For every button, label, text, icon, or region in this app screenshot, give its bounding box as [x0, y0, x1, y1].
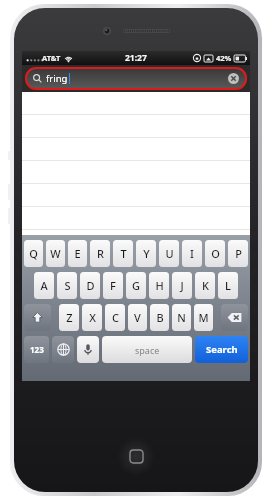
button[interactable]: W — [46, 240, 65, 267]
staticText: T — [120, 246, 127, 261]
staticText: AT&T — [42, 53, 61, 63]
button[interactable]: Shift — [24, 304, 51, 331]
button[interactable]: I — [182, 240, 202, 267]
staticText: B — [156, 310, 164, 325]
staticText: F — [110, 278, 116, 293]
staticText: Search — [206, 343, 238, 356]
staticText: fring — [46, 72, 68, 85]
staticText: Z — [66, 310, 73, 325]
staticText: N — [177, 310, 186, 325]
staticText: Q — [29, 246, 38, 261]
staticText: R — [97, 246, 104, 261]
staticText: C — [112, 310, 119, 325]
staticText: space — [135, 344, 160, 356]
staticText: I — [190, 246, 194, 261]
button[interactable]: J — [172, 272, 192, 299]
staticText: Y — [143, 246, 150, 261]
staticText: 123 — [30, 344, 44, 355]
button[interactable]: Clear search — [228, 73, 239, 84]
staticText: 21:27 — [125, 52, 147, 64]
button[interactable]: space — [102, 336, 192, 363]
staticText: L — [225, 278, 231, 293]
button[interactable]: O — [205, 240, 225, 267]
button[interactable]: 123 — [24, 336, 49, 363]
button[interactable]: Search — [195, 336, 248, 363]
staticText: A — [40, 278, 48, 293]
button[interactable]: Z — [59, 304, 79, 331]
button[interactable]: A — [34, 272, 54, 299]
button[interactable]: Home — [117, 437, 155, 475]
button[interactable]: T — [113, 240, 133, 267]
staticText: S — [64, 278, 71, 293]
staticText: O — [211, 246, 220, 261]
button[interactable]: V — [128, 304, 147, 331]
button[interactable]: S — [57, 272, 77, 299]
button[interactable]: R — [90, 240, 110, 267]
button[interactable]: B — [150, 304, 169, 331]
staticText: K — [202, 278, 209, 293]
button[interactable]: P — [228, 240, 248, 267]
button[interactable]: Switch keyboard — [52, 336, 74, 363]
button[interactable]: Y — [136, 240, 156, 267]
staticText: D — [86, 278, 95, 293]
staticText: X — [89, 310, 96, 325]
button[interactable]: N — [172, 304, 191, 331]
staticText: G — [132, 278, 140, 293]
button[interactable]: E — [68, 240, 87, 267]
button[interactable]: C — [105, 304, 125, 331]
button[interactable]: U — [159, 240, 179, 267]
staticText: M — [198, 310, 209, 325]
button[interactable]: Q — [24, 240, 43, 267]
staticText: E — [74, 246, 81, 261]
button[interactable]: F — [103, 272, 123, 299]
staticText: V — [134, 310, 141, 325]
button[interactable]: fring — [27, 69, 245, 88]
staticText: H — [155, 278, 164, 293]
button[interactable]: G — [126, 272, 146, 299]
staticText: U — [165, 246, 174, 261]
button[interactable]: Dictate — [77, 336, 99, 363]
staticText: P — [235, 246, 242, 261]
button[interactable]: H — [149, 272, 169, 299]
button[interactable]: K — [195, 272, 215, 299]
button[interactable]: D — [80, 272, 100, 299]
button[interactable]: L — [218, 272, 238, 299]
button[interactable]: X — [82, 304, 102, 331]
button[interactable]: Backspace — [221, 304, 248, 331]
button[interactable]: M — [194, 304, 213, 331]
staticText: J — [180, 278, 184, 293]
staticText: 42% — [216, 53, 232, 63]
staticText: W — [50, 246, 61, 261]
